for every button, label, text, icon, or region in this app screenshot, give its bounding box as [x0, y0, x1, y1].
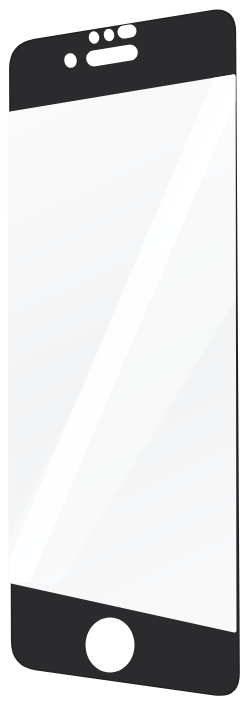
button[interactable]: Tempered glass screen protector product …: [0, 0, 246, 720]
